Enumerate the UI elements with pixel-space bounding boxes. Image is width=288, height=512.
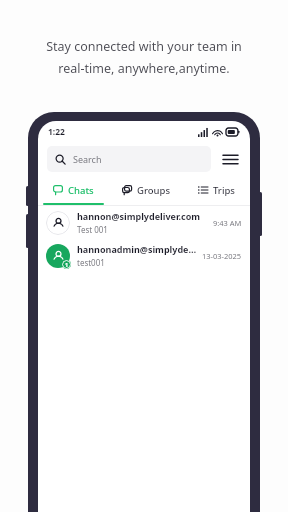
staticText: hannon@simplydeliver.com [77, 210, 201, 222]
button[interactable]: hannon@simplydeliver.com [38, 206, 250, 239]
button[interactable]: Trips [183, 177, 250, 203]
staticText: 13-03-2025 [202, 251, 242, 261]
staticText: test001 [77, 257, 105, 268]
staticText: hannonadmin@simplydeliver.... [77, 243, 198, 255]
button[interactable]: Search [47, 146, 211, 172]
staticText: 1 [65, 261, 69, 268]
staticText: 1:22 [48, 126, 65, 138]
button[interactable]: Chats [38, 177, 109, 203]
staticText: real-time, anywhere,anytime. [58, 60, 230, 77]
button[interactable]: Menu [219, 148, 241, 170]
staticText: Trips [213, 184, 235, 197]
button[interactable]: Groups [109, 177, 183, 203]
staticText: Search [73, 153, 102, 165]
staticText: Test 001 [77, 224, 108, 235]
staticText: Stay connected with your team in [46, 38, 242, 55]
staticText: 9:43 AM [213, 218, 242, 228]
staticText: Groups [137, 184, 171, 197]
staticText: Chats [68, 184, 94, 197]
button[interactable]: 1 [38, 239, 250, 272]
